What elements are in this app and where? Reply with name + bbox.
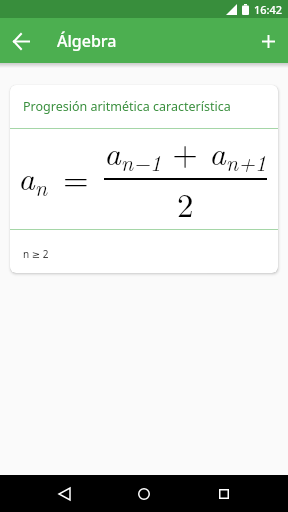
button[interactable] bbox=[34, 475, 94, 512]
button[interactable] bbox=[7, 27, 35, 55]
staticText: Álgebra bbox=[57, 30, 117, 52]
button[interactable] bbox=[114, 475, 174, 512]
staticText: Progresión aritmética característica bbox=[23, 98, 231, 115]
button[interactable] bbox=[194, 475, 254, 512]
staticText: 16:42 bbox=[254, 2, 283, 17]
button[interactable] bbox=[254, 27, 282, 55]
staticText: an−1 + an+1 bbox=[104, 128, 267, 178]
button[interactable]: Progresión aritmética característica bbox=[10, 85, 278, 273]
staticText: n ≥ 2 bbox=[23, 247, 49, 261]
staticText: = bbox=[52, 154, 100, 201]
staticText: an bbox=[18, 153, 48, 203]
staticText: 2 bbox=[177, 180, 194, 227]
